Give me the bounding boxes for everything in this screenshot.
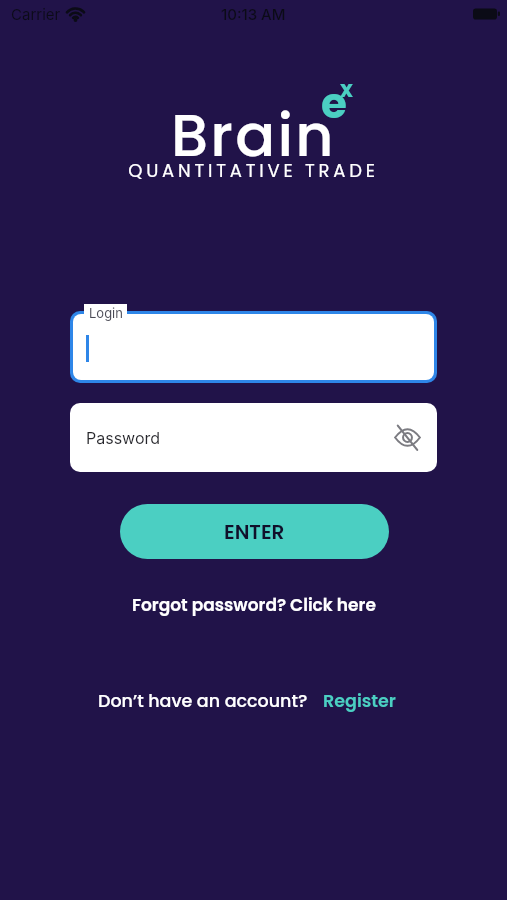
button[interactable]: ENTER bbox=[120, 504, 389, 559]
button[interactable] bbox=[73, 314, 434, 380]
button[interactable]: Password bbox=[70, 403, 437, 472]
staticText: 10:13 AM bbox=[221, 5, 286, 23]
staticText: Brain bbox=[171, 94, 336, 177]
staticText: Forgot password? Click here bbox=[132, 593, 376, 617]
button[interactable]: Register bbox=[323, 689, 396, 714]
staticText: Register bbox=[323, 689, 396, 714]
staticText: x bbox=[340, 74, 353, 105]
staticText: Password bbox=[86, 428, 161, 447]
staticText: QUANTITATIVE TRADE bbox=[0, 158, 507, 183]
staticText: Login bbox=[89, 305, 123, 321]
staticText: Carrier bbox=[11, 5, 61, 23]
staticText: Don’t have an account? bbox=[98, 689, 308, 714]
staticText: ENTER bbox=[224, 518, 285, 546]
button[interactable]: Forgot password? Click here bbox=[132, 593, 376, 617]
staticText: e bbox=[321, 74, 347, 133]
